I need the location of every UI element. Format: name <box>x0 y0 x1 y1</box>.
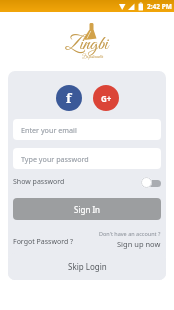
staticText: f <box>66 89 72 107</box>
button[interactable]: G+ <box>93 85 119 111</box>
button[interactable]: Skip Login <box>8 253 166 280</box>
staticText: Sign In <box>74 204 101 215</box>
button[interactable]: Enter your email <box>13 119 161 140</box>
button[interactable] <box>141 177 162 189</box>
staticText: Don't have an account ? <box>99 230 161 237</box>
staticText: G+ <box>101 93 112 104</box>
staticText: Be fashionable <box>82 54 103 60</box>
staticText: Skip Login <box>68 261 107 272</box>
button[interactable]: Sign up now <box>117 239 161 249</box>
button[interactable]: Forgot Password ? <box>13 237 74 247</box>
button[interactable]: Type your password <box>13 148 161 169</box>
button[interactable]: f <box>56 85 82 111</box>
staticText: 2:42 PM <box>147 2 172 11</box>
staticText: Show password <box>13 177 65 187</box>
button[interactable]: Sign In <box>13 198 161 220</box>
staticText: Enter your email <box>21 125 77 135</box>
staticText: Type your password <box>21 154 89 164</box>
staticText: Zingbi <box>65 32 109 57</box>
